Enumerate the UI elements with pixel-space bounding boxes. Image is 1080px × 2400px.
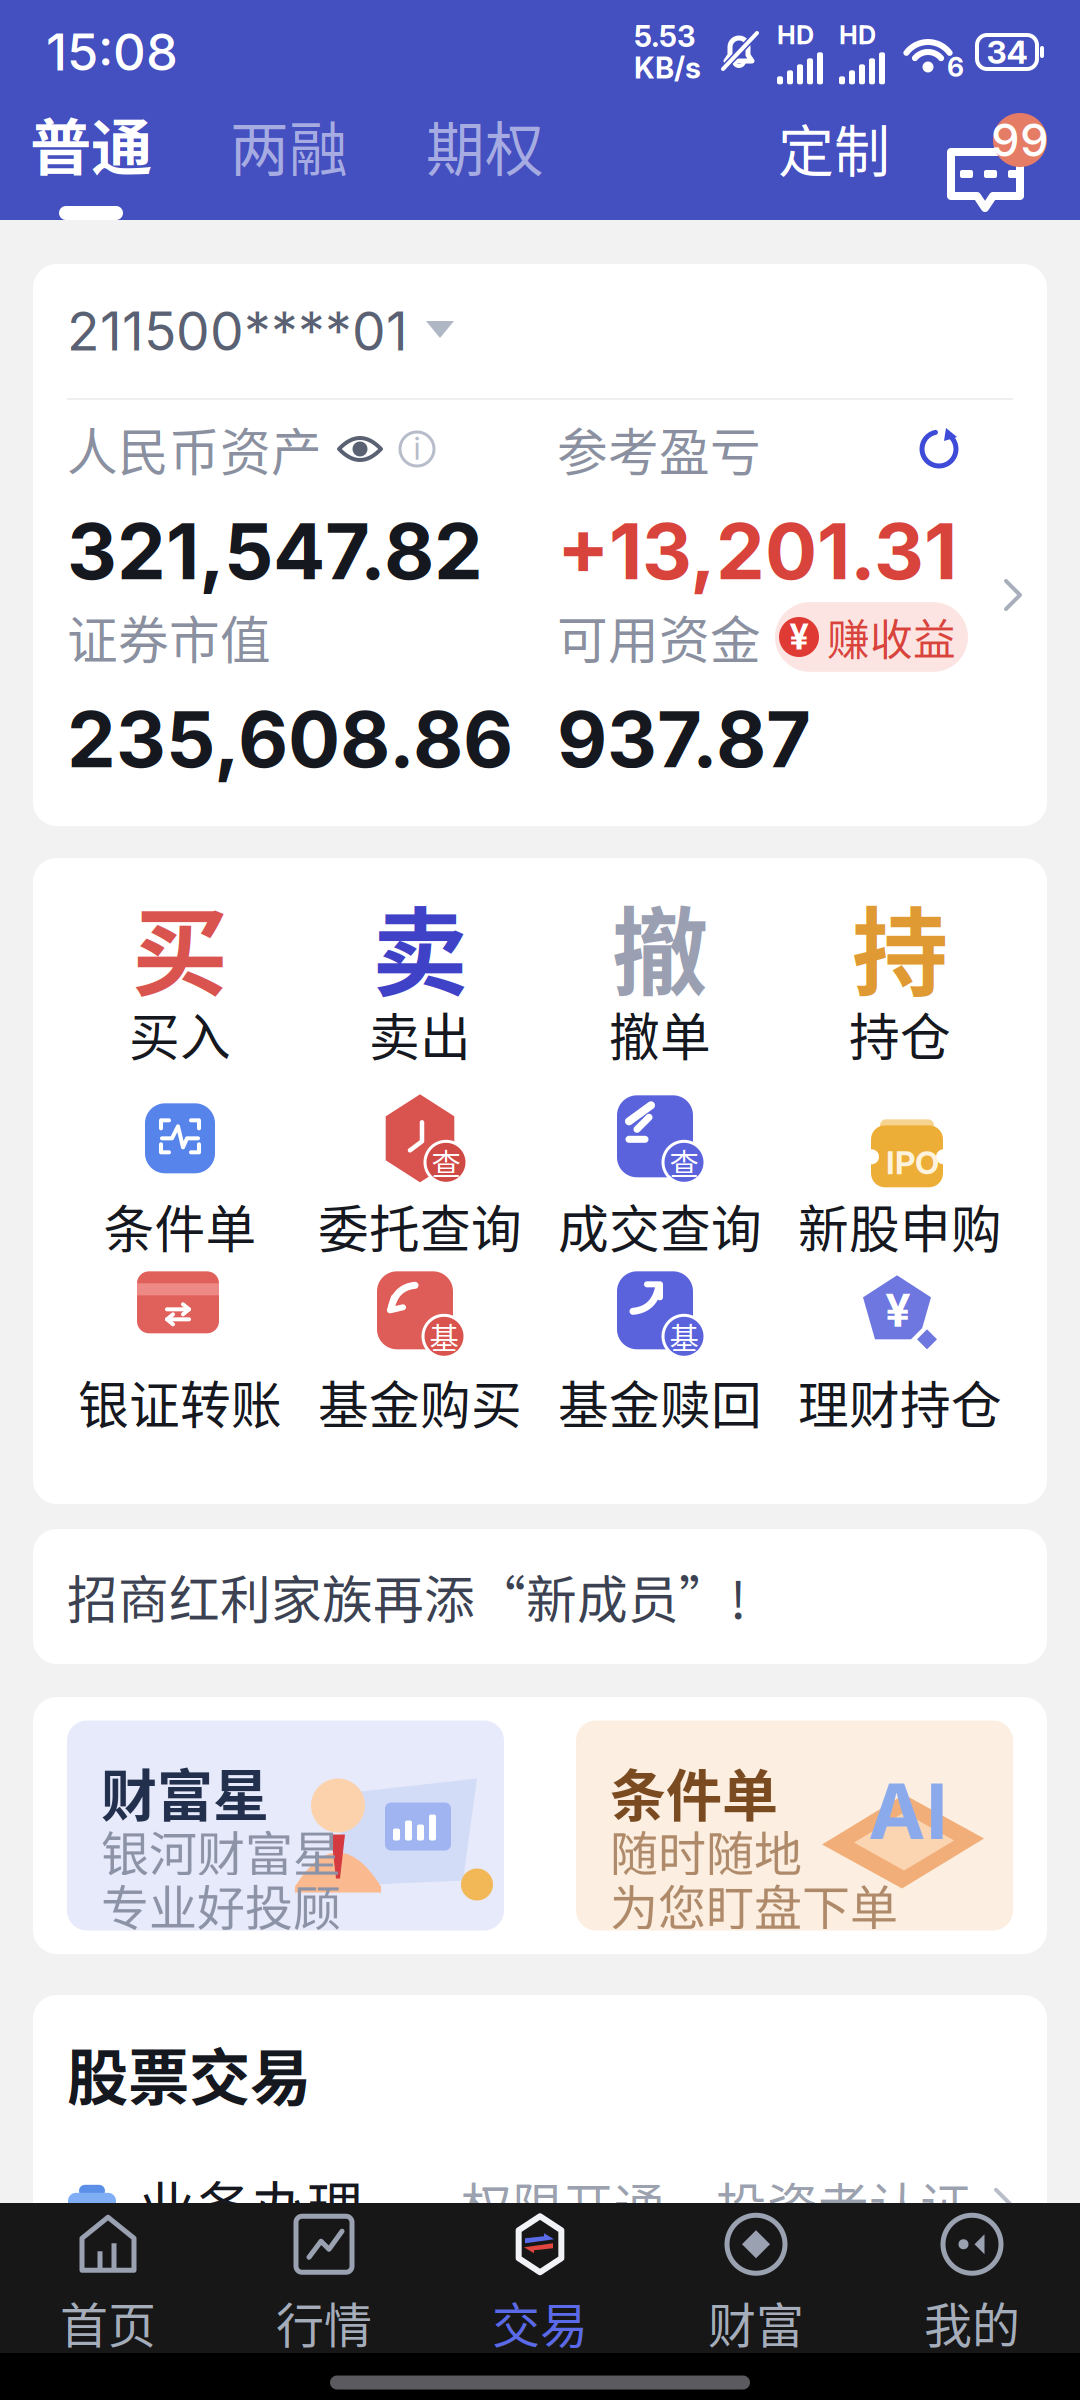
staticText: 卖 <box>372 876 468 1015</box>
button[interactable]: 业务办理 <box>33 2154 1047 2254</box>
staticText: 211500****01 <box>67 299 408 363</box>
staticText: 持仓 <box>849 997 951 1071</box>
button[interactable]: IPO <box>780 1098 1020 1268</box>
staticText: 6 <box>947 51 964 83</box>
staticText: HD <box>777 20 814 50</box>
button[interactable]: 财富 <box>648 2203 864 2353</box>
staticText: 期权 <box>426 103 544 188</box>
button[interactable]: 查 <box>300 1098 540 1268</box>
button[interactable]: 人民币资产 <box>33 400 1047 826</box>
staticText: 财富星 <box>101 1751 269 1832</box>
staticText: 为您盯盘下单 <box>610 1870 898 1939</box>
staticText: 买入 <box>129 997 231 1071</box>
staticText: KB/s <box>634 50 701 85</box>
button[interactable]: 卖 <box>300 916 540 1066</box>
staticText: 证券市值 <box>67 600 271 674</box>
button[interactable]: 期权 <box>418 103 552 220</box>
button[interactable]: 普通 <box>22 99 160 220</box>
staticText: 撤单 <box>609 997 711 1071</box>
staticText: 买 <box>132 876 228 1015</box>
staticText: 基 <box>429 1315 458 1358</box>
staticText: 持 <box>852 876 948 1015</box>
button[interactable]: 招商红利家族再添“新成员”! <box>33 1529 1047 1664</box>
staticText: +13,201.31 <box>557 504 957 598</box>
staticText: 15:08 <box>46 21 178 83</box>
staticText: HD <box>839 20 876 50</box>
staticText: 银河财富星 <box>101 1816 341 1885</box>
button[interactable]: 首页 <box>0 2203 216 2353</box>
button[interactable]: ¥ <box>780 1274 1020 1444</box>
staticText: 两融 <box>230 103 348 188</box>
staticText: 权限开通、投资者认证 <box>461 2167 971 2240</box>
button[interactable]: 买 <box>60 916 300 1066</box>
staticText: 参考盈亏 <box>557 412 761 486</box>
button[interactable]: 交易 <box>432 2203 648 2353</box>
button[interactable]: 定制 <box>770 107 898 220</box>
staticText: 条件单 <box>103 1189 256 1263</box>
staticText: 财富 <box>708 2287 804 2357</box>
staticText: 条件单 <box>610 1751 778 1832</box>
staticText: 业务办理 <box>139 2163 363 2244</box>
button[interactable]: 两融 <box>222 103 356 220</box>
staticText: 交易 <box>492 2287 588 2357</box>
staticText: 5.53 <box>634 18 696 54</box>
button[interactable]: 银证转账 <box>60 1274 300 1444</box>
staticText: AI <box>868 1764 948 1858</box>
button[interactable]: 行情 <box>216 2203 432 2353</box>
staticText: 基金购买 <box>318 1365 522 1439</box>
staticText: IPO <box>886 1143 939 1182</box>
button[interactable]: 财富星 <box>67 1720 504 1930</box>
staticText: 卖出 <box>369 997 471 1071</box>
button[interactable]: 持 <box>780 916 1020 1066</box>
button[interactable]: 基 <box>300 1274 540 1444</box>
staticText: 理财持仓 <box>798 1365 1002 1439</box>
button[interactable]: AI <box>576 1720 1013 1930</box>
button[interactable]: 211500****01 <box>33 264 1047 398</box>
staticText: 股票交易 <box>67 2029 311 2118</box>
staticText: 我的 <box>924 2287 1020 2357</box>
staticText: 定制 <box>778 107 890 188</box>
staticText: 银证转账 <box>78 1365 282 1439</box>
staticText: ¥ <box>789 616 808 658</box>
staticText: 人民币资产 <box>67 412 322 486</box>
staticText: 基金赎回 <box>558 1365 762 1439</box>
staticText: 235,608.86 <box>67 692 513 786</box>
staticText: 99 <box>991 113 1049 167</box>
staticText: i <box>413 429 420 467</box>
staticText: 随时随地 <box>610 1816 802 1885</box>
staticText: 937.87 <box>557 692 811 786</box>
staticText: 普通 <box>30 99 152 188</box>
staticText: 321,547.82 <box>67 504 483 598</box>
staticText: 基 <box>669 1315 698 1358</box>
staticText: 新股申购 <box>798 1189 1002 1263</box>
staticText: 查 <box>669 1141 698 1184</box>
staticText: 专业好投顾 <box>101 1870 341 1939</box>
staticText: 行情 <box>276 2287 372 2357</box>
staticText: 赚收益 <box>827 606 956 668</box>
staticText: 34 <box>986 33 1027 71</box>
staticText: 可用资金 <box>557 600 761 674</box>
staticText: 撤 <box>612 876 708 1015</box>
staticText: 首页 <box>60 2287 156 2357</box>
staticText: 查 <box>431 1141 460 1184</box>
button[interactable]: 查 <box>540 1098 780 1268</box>
staticText: 成交查询 <box>558 1189 762 1263</box>
staticText: ¥ <box>885 1283 911 1338</box>
button[interactable]: 条件单 <box>60 1098 300 1268</box>
staticText: 招商红利家族再添“新成员”! <box>67 1560 746 1633</box>
button[interactable]: Messages <box>946 116 1050 220</box>
button[interactable]: 基 <box>540 1274 780 1444</box>
button[interactable]: 撤 <box>540 916 780 1066</box>
button[interactable]: 我的 <box>864 2203 1080 2353</box>
staticText: 委托查询 <box>318 1189 522 1263</box>
